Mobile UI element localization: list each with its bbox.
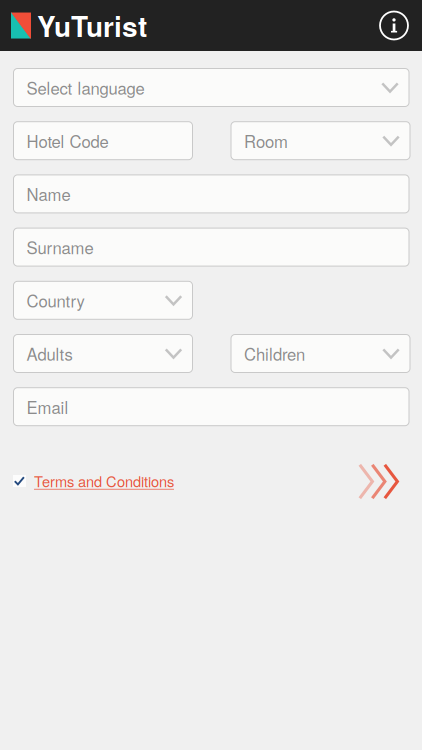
button[interactable]: Name	[13, 175, 409, 213]
button[interactable]: Continue	[358, 463, 399, 500]
button[interactable]: Hotel Code	[13, 122, 192, 160]
staticText: Country	[26, 288, 84, 312]
staticText: Surname	[26, 235, 93, 259]
button[interactable]: Surname	[13, 228, 409, 266]
button[interactable]: Country	[13, 281, 192, 319]
staticText: Children	[244, 342, 305, 365]
staticText: Room	[244, 129, 288, 153]
staticText: Select language	[26, 76, 144, 99]
button[interactable]: Terms and Conditions	[13, 469, 177, 493]
button[interactable]: Children	[231, 334, 410, 372]
staticText: Hotel Code	[26, 129, 108, 153]
staticText: Email	[26, 395, 68, 419]
staticText: Adults	[26, 342, 72, 365]
staticText: Terms and Conditions	[34, 470, 174, 491]
staticText: Name	[26, 182, 70, 206]
button[interactable]: Email	[13, 388, 409, 426]
button[interactable]: Select language	[13, 68, 409, 106]
button[interactable]: Room	[231, 122, 410, 160]
staticText: YuTurist	[37, 5, 147, 46]
button[interactable]: Information	[380, 11, 408, 39]
button[interactable]: Adults	[13, 334, 192, 372]
